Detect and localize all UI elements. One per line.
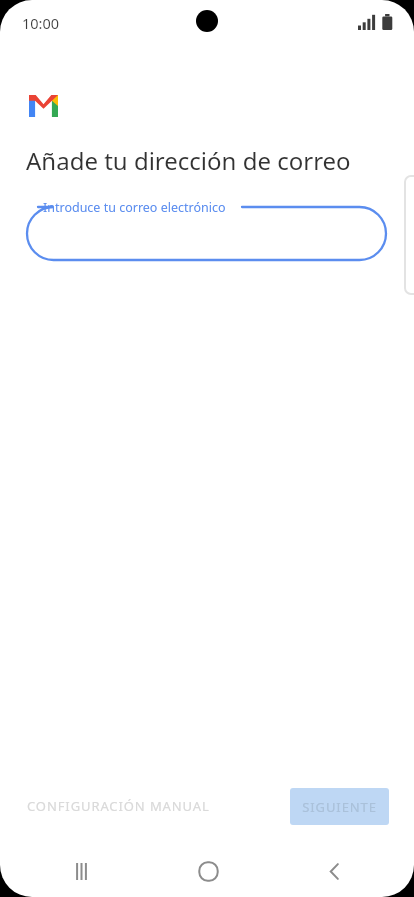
staticText: SIGUIENTE bbox=[302, 798, 377, 816]
button[interactable]: Home bbox=[196, 845, 220, 897]
button[interactable]: CONFIGURACIÓN MANUAL bbox=[16, 788, 221, 824]
staticText: 10:00 bbox=[22, 13, 60, 33]
button[interactable]: SIGUIENTE bbox=[290, 788, 389, 825]
staticText: Introduce tu correo electrónico bbox=[43, 199, 226, 216]
staticText: Añade tu dirección de correo bbox=[26, 144, 398, 177]
button[interactable]: Recent apps bbox=[69, 845, 93, 897]
button[interactable]: Back bbox=[322, 845, 346, 897]
button[interactable]: Introduce tu correo electrónico bbox=[20, 196, 394, 272]
staticText: CONFIGURACIÓN MANUAL bbox=[27, 797, 210, 815]
